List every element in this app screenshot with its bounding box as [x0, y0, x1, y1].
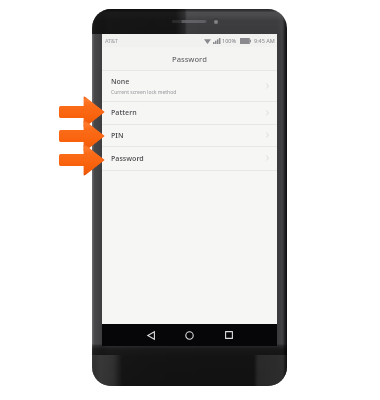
staticText: Current screen lock method [111, 89, 177, 96]
staticText: 100% [222, 37, 237, 44]
button[interactable]: Password [102, 146, 277, 170]
staticText: AT&T [105, 37, 118, 44]
staticText: PIN [111, 131, 124, 141]
staticText: Password [172, 54, 207, 64]
button[interactable]: Pattern [102, 101, 277, 124]
staticText: None [111, 77, 130, 87]
button[interactable]: Recent apps [209, 324, 248, 346]
button[interactable]: None [102, 70, 277, 101]
button[interactable]: Back [131, 324, 170, 346]
staticText: Password [111, 154, 144, 164]
staticText: Pattern [111, 108, 137, 118]
button[interactable]: Home [170, 324, 209, 346]
staticText: 9:45 AM [254, 37, 275, 44]
button[interactable]: PIN [102, 124, 277, 146]
